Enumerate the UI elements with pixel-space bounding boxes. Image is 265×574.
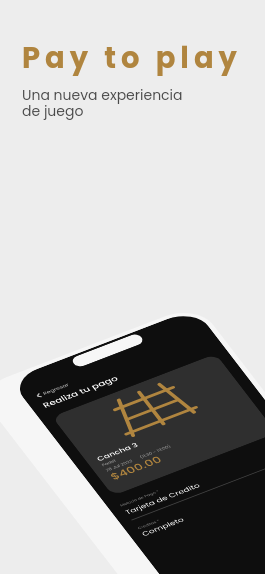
staticText: Realiza tu pago xyxy=(40,373,121,410)
staticText: Pay to play xyxy=(22,38,242,79)
staticText: Cancha 3 xyxy=(95,440,141,463)
staticText: Regresar xyxy=(41,381,70,396)
staticText: Completo xyxy=(140,515,186,538)
staticText: Una nueva experiencia de juego xyxy=(22,85,183,121)
staticText: Padel xyxy=(100,458,117,467)
staticText: (11:30 - 13:00) xyxy=(138,443,172,459)
staticText: Tarjeta de Credito xyxy=(123,481,202,516)
staticText: $400.00 xyxy=(107,453,165,483)
staticText: Creditos * xyxy=(137,518,161,531)
staticText: 28 Jul 2023 xyxy=(104,458,133,472)
staticText: Metodo de Pago * xyxy=(119,489,161,508)
